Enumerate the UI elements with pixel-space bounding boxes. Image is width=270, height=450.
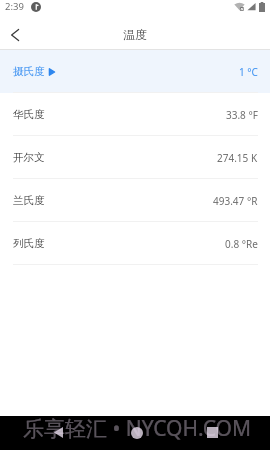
button[interactable]: 兰氏度 [0,179,270,222]
button[interactable]: 列氏度 [0,222,270,265]
staticText: 2:39 [5,0,24,13]
button[interactable]: 开尔文 [0,136,270,179]
staticText: 温度 [123,27,147,42]
button[interactable]: 华氏度 [0,93,270,136]
staticText: 列氏度 [13,237,45,250]
button[interactable]: Home [124,420,150,446]
staticText: 493.47 °R [213,194,258,208]
button[interactable]: Back [3,23,26,46]
staticText: 33.8 °F [226,108,258,122]
staticText: 274.15 K [217,151,258,165]
staticText: 1 °C [239,65,258,79]
staticText: 乐享轻汇 • NYCQH.COM [23,414,251,443]
staticText: 0.8 °Re [225,237,258,251]
button[interactable]: Recents [199,419,225,445]
staticText: 摄氏度 [13,65,45,78]
staticText: 华氏度 [13,108,45,121]
button[interactable]: Back [45,419,72,446]
staticText: 兰氏度 [13,194,45,207]
button[interactable]: 摄氏度 [0,50,270,93]
staticText: 开尔文 [13,151,45,164]
